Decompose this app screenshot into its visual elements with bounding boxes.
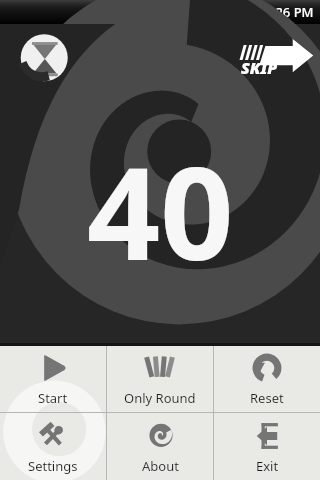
button[interactable]: Reset [214, 346, 320, 412]
button[interactable]: Settings [0, 413, 106, 480]
button[interactable]: Skip [238, 38, 314, 82]
staticText: Reset [250, 389, 284, 407]
staticText: About [142, 457, 179, 475]
staticText: Settings [28, 457, 78, 475]
button[interactable]: Exit [214, 413, 320, 480]
staticText: Only Round [124, 389, 196, 407]
staticText: Exit [256, 457, 279, 475]
staticText: 11:26 PM [257, 3, 314, 21]
staticText: SKIP [241, 57, 278, 79]
staticText: Start [38, 389, 68, 407]
button[interactable]: About [107, 413, 213, 480]
button[interactable]: Start [0, 346, 106, 412]
button[interactable]: Only Round [107, 346, 213, 412]
button[interactable]: Timer [14, 32, 70, 88]
staticText: 40 [87, 123, 234, 297]
